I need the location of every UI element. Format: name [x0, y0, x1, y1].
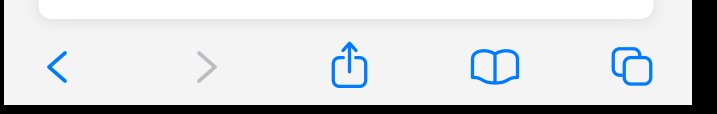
button[interactable]: Forward	[159, 30, 255, 104]
button[interactable]: Tabs	[584, 30, 680, 104]
button[interactable]: Bookmarks	[447, 30, 543, 104]
button[interactable]: Share	[301, 30, 397, 104]
button[interactable]: Back	[9, 30, 105, 104]
